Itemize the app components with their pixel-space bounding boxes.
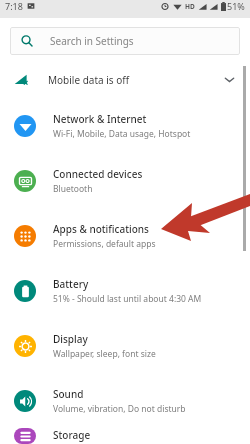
staticText: Bluetooth [53,183,93,195]
button[interactable]: Display [0,318,250,373]
button[interactable]: Sound [0,373,250,428]
staticText: 51% [227,0,245,12]
staticText: Search in Settings [50,34,134,48]
staticText: Network & Internet [53,112,147,126]
button[interactable]: Mobile data is off [0,61,250,98]
staticText: 51% - Should last until about 4:30 AM [53,293,202,305]
button[interactable]: Storage [0,428,250,444]
staticText: Wi-Fi, Mobile, Data usage, Hotspot [53,128,191,140]
staticText: Storage [53,428,91,442]
staticText: Display [53,332,88,346]
staticText: Volume, vibration, Do not disturb [53,403,186,415]
staticText: Apps & notifications [53,222,149,236]
button[interactable]: Battery [0,263,250,318]
staticText: Battery [53,277,89,291]
staticText: Sound [53,387,84,401]
staticText: Wallpaper, sleep, font size [53,348,156,360]
button[interactable]: Search in Settings [10,27,240,55]
button[interactable]: Apps & notifications [0,208,250,263]
staticText: Permissions, default apps [53,238,156,250]
button[interactable]: Connected devices [0,153,250,208]
staticText: Connected devices [53,167,143,181]
button[interactable]: Network & Internet [0,98,250,153]
staticText: 7:18 [5,0,23,12]
staticText: HD [185,2,195,11]
staticText: Mobile data is off [48,73,130,87]
